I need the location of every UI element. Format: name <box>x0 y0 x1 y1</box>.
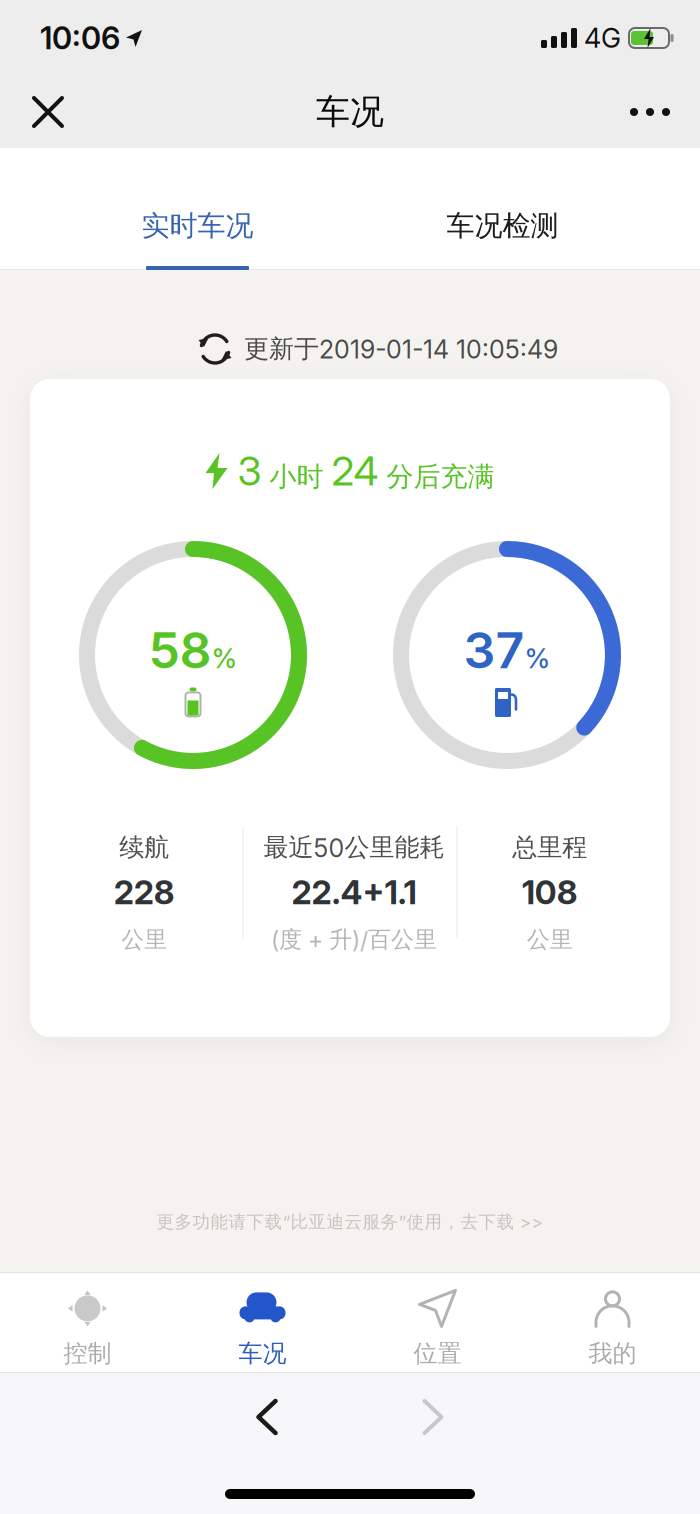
staticText: 公里 <box>527 925 573 954</box>
button[interactable]: 车况检测 <box>350 208 655 244</box>
staticText: 更多功能请下载“比亚迪云服务”使用，去下载 >> <box>156 1211 543 1233</box>
staticText: 4G <box>584 22 621 54</box>
button[interactable]: 我的 <box>525 1276 700 1369</box>
button[interactable] <box>418 1399 446 1435</box>
staticText: 位置 <box>413 1338 461 1369</box>
button[interactable] <box>630 108 670 116</box>
button[interactable]: 车况 <box>175 1276 350 1369</box>
staticText: 车况 <box>238 1338 286 1369</box>
staticText: 实时车况 <box>141 208 253 244</box>
staticText: 更新于2019-01-14 10:05:49 <box>244 333 558 365</box>
button[interactable]: 控制 <box>0 1276 175 1369</box>
staticText: 续航 <box>119 832 169 863</box>
button[interactable] <box>33 97 63 127</box>
staticText: 控制 <box>63 1338 111 1369</box>
staticText: 108 <box>522 872 578 912</box>
staticText: 我的 <box>588 1338 636 1369</box>
staticText: 22.4+1.1 <box>291 872 416 912</box>
button[interactable]: 实时车况 <box>45 208 350 244</box>
staticText: 37% <box>463 620 550 679</box>
button[interactable] <box>253 1399 281 1435</box>
staticText: 总里程 <box>512 832 587 863</box>
staticText: 公里 <box>121 925 167 954</box>
staticText: 58% <box>148 620 237 679</box>
button[interactable]: 更新于2019-01-14 10:05:49 <box>198 332 558 366</box>
staticText: 最近50公里能耗 <box>263 832 444 863</box>
staticText: 车况检测 <box>446 208 558 244</box>
button[interactable]: 更多功能请下载“比亚迪云服务”使用，去下载 >> <box>156 1211 543 1233</box>
staticText: 10:06 <box>40 19 120 57</box>
staticText: 3 小时 24 分后充满 <box>237 447 494 495</box>
staticText: 车况 <box>316 91 384 133</box>
button[interactable]: 位置 <box>350 1276 525 1369</box>
staticText: (度 + 升)/百公里 <box>271 925 437 954</box>
staticText: 228 <box>114 872 175 912</box>
